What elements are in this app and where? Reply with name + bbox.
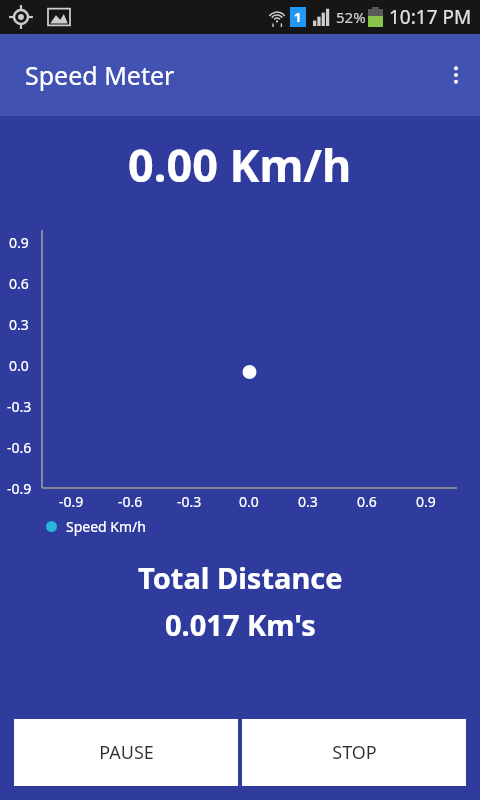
staticText: Total Distance: [138, 558, 343, 597]
staticText: 0.3: [298, 492, 318, 511]
button[interactable]: More options: [432, 51, 480, 99]
staticText: 0.00 Km/h: [128, 134, 352, 195]
staticText: 10:17 PM: [389, 4, 472, 30]
staticText: STOP: [332, 740, 377, 765]
staticText: 0.017 Km's: [165, 605, 316, 644]
staticText: -0.9: [7, 479, 32, 498]
staticText: -0.3: [177, 492, 202, 511]
staticText: -0.3: [7, 397, 32, 416]
staticText: 0.9: [9, 233, 29, 252]
staticText: 52%: [336, 7, 366, 27]
staticText: 0.6: [357, 492, 377, 511]
staticText: -0.6: [118, 492, 143, 511]
staticText: PAUSE: [99, 740, 154, 765]
staticText: Speed Meter: [25, 58, 175, 92]
staticText: -0.9: [59, 492, 84, 511]
staticText: 0.6: [9, 274, 29, 293]
staticText: 0.0: [9, 356, 29, 375]
staticText: -0.6: [7, 438, 32, 457]
staticText: 0.0: [239, 492, 259, 511]
staticText: 0.3: [9, 315, 29, 334]
staticText: 0.9: [416, 492, 436, 511]
staticText: Speed Km/h: [66, 517, 146, 536]
button[interactable]: PAUSE: [14, 719, 238, 786]
button[interactable]: STOP: [242, 719, 466, 786]
staticText: 1: [294, 8, 302, 26]
